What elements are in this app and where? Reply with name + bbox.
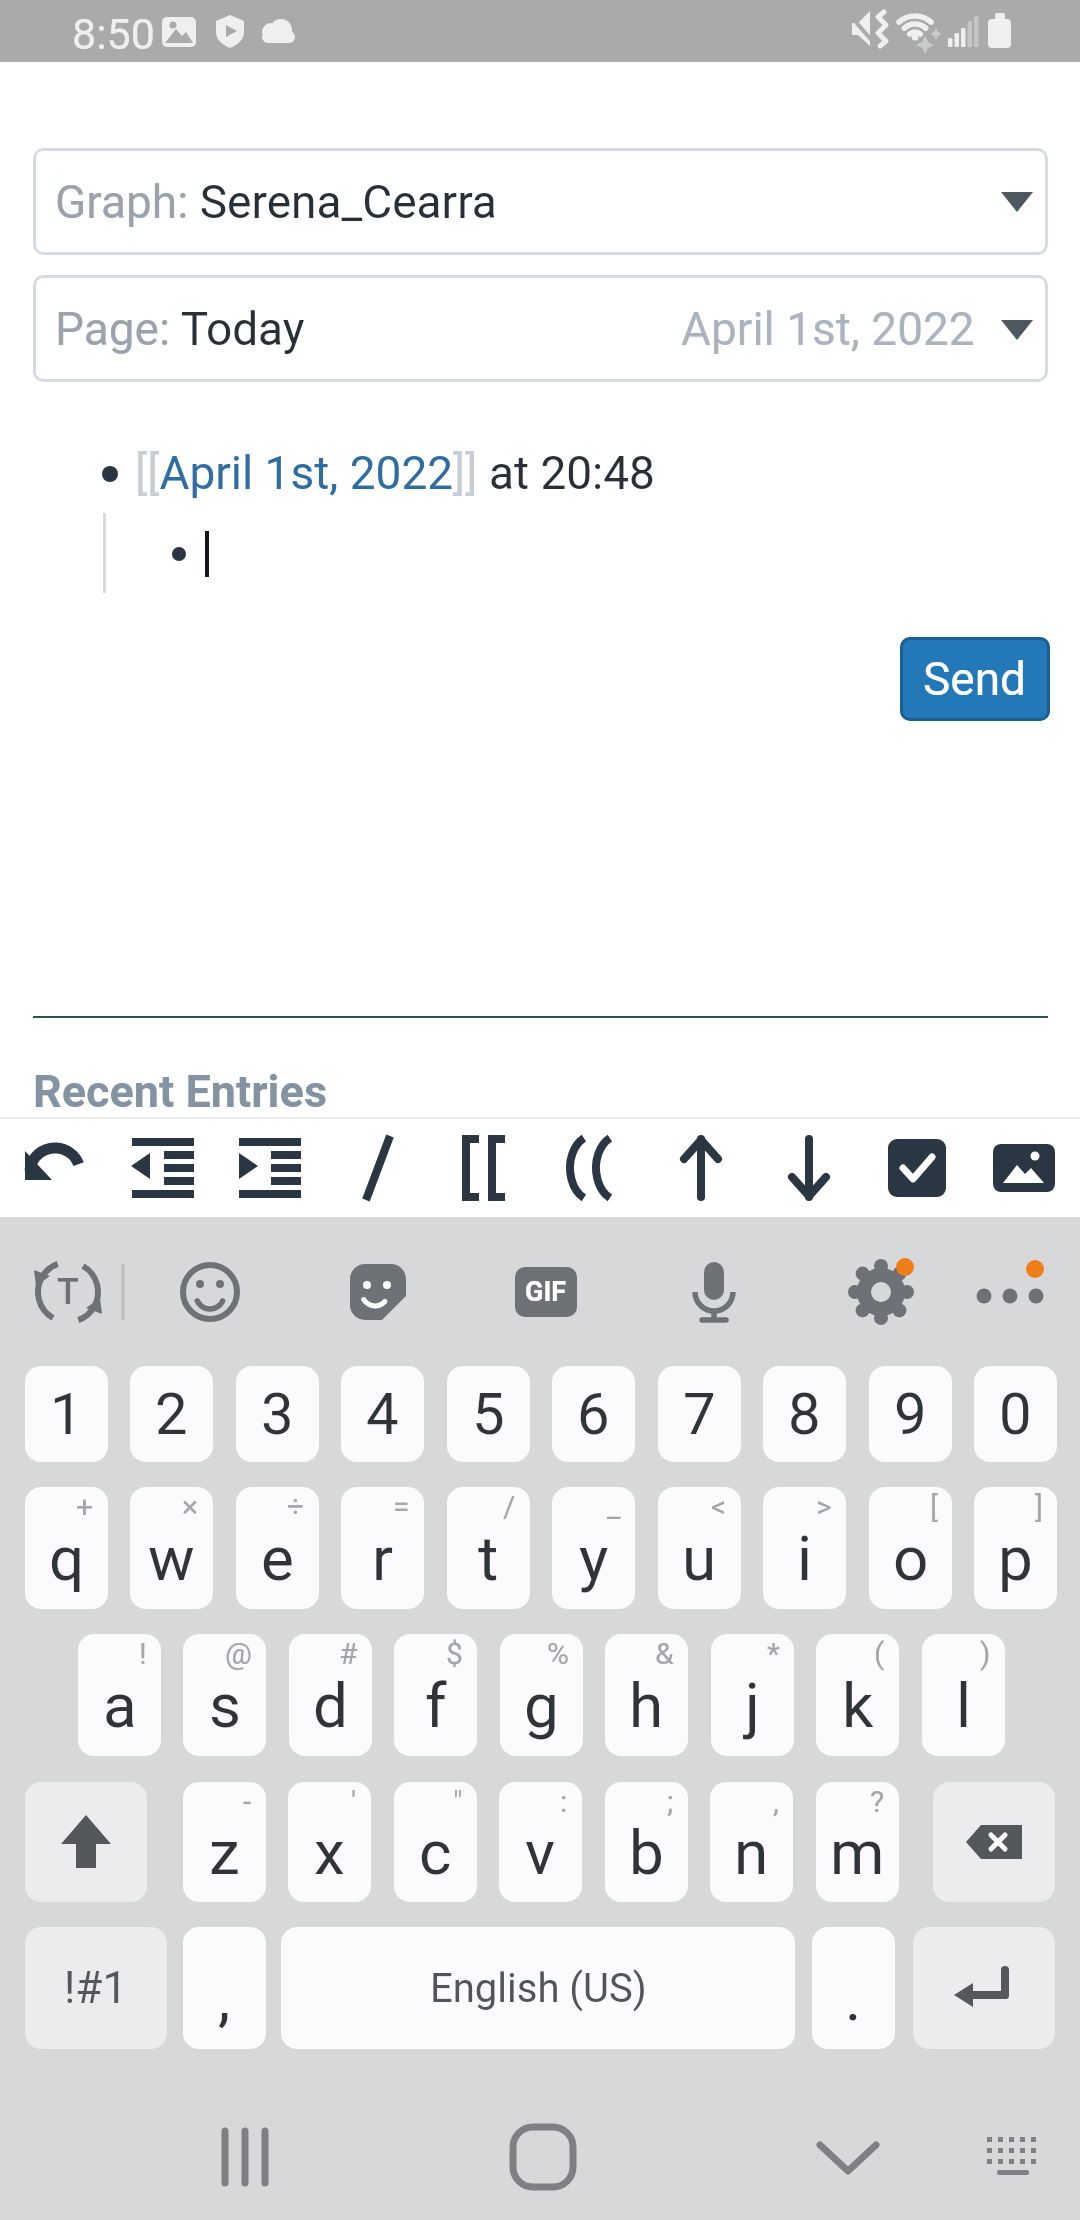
button[interactable] xyxy=(25,1782,147,1902)
staticText: l xyxy=(956,1669,972,1742)
button[interactable] xyxy=(160,1247,260,1337)
button[interactable]: x xyxy=(288,1782,371,1902)
button[interactable]: k xyxy=(816,1634,899,1756)
button[interactable]: z xyxy=(183,1782,266,1902)
button[interactable]: g xyxy=(500,1634,583,1756)
button[interactable] xyxy=(831,1247,931,1337)
staticText: d xyxy=(313,1669,348,1742)
button[interactable] xyxy=(10,1123,100,1213)
staticText: # xyxy=(339,1636,358,1671)
button[interactable]: 6 xyxy=(552,1366,635,1462)
button[interactable]: 7 xyxy=(658,1366,741,1462)
button[interactable] xyxy=(18,1247,118,1337)
button[interactable] xyxy=(933,1782,1055,1902)
button[interactable]: 1 xyxy=(25,1366,108,1462)
button[interactable]: o xyxy=(869,1487,952,1609)
button[interactable]: 3 xyxy=(236,1366,319,1462)
button[interactable]: e xyxy=(236,1487,319,1609)
staticText: p xyxy=(998,1522,1033,1595)
button[interactable]: English (US) xyxy=(281,1927,795,2049)
button[interactable] xyxy=(483,2102,603,2212)
staticText: 0 xyxy=(999,1380,1032,1448)
button[interactable]: 5 xyxy=(447,1366,530,1462)
button[interactable]: 4 xyxy=(341,1366,424,1462)
button[interactable] xyxy=(549,1123,639,1213)
button[interactable] xyxy=(656,1123,746,1213)
staticText: h xyxy=(629,1669,664,1742)
button[interactable]: c xyxy=(394,1782,477,1902)
button[interactable]: y xyxy=(552,1487,635,1609)
button[interactable]: b xyxy=(605,1782,688,1902)
button[interactable] xyxy=(118,1123,208,1213)
staticText: GIF xyxy=(525,1276,567,1308)
staticText: [[April 1st, 2022]] at 20:48 xyxy=(135,446,655,500)
button[interactable] xyxy=(764,1123,854,1213)
staticText: z xyxy=(209,1816,240,1889)
staticText: : xyxy=(560,1784,568,1819)
button[interactable]: h xyxy=(605,1634,688,1756)
staticText: ? xyxy=(870,1784,885,1819)
staticText: 4 xyxy=(366,1380,399,1448)
button[interactable]: 9 xyxy=(869,1366,952,1462)
staticText: % xyxy=(547,1636,569,1671)
staticText: , xyxy=(218,1962,231,2035)
button[interactable]: q xyxy=(25,1487,108,1609)
button[interactable]: i xyxy=(763,1487,846,1609)
staticText: v xyxy=(525,1816,556,1889)
button[interactable] xyxy=(328,1247,428,1337)
button[interactable]: r xyxy=(341,1487,424,1609)
staticText: u xyxy=(682,1522,717,1595)
staticText: ; xyxy=(667,1784,674,1819)
button[interactable]: , xyxy=(183,1927,266,2049)
button[interactable]: f xyxy=(394,1634,477,1756)
button[interactable]: n xyxy=(710,1782,793,1902)
button[interactable]: p xyxy=(974,1487,1057,1609)
button[interactable] xyxy=(441,1123,531,1213)
button[interactable]: j xyxy=(711,1634,794,1756)
button[interactable]: 8 xyxy=(763,1366,846,1462)
button[interactable]: s xyxy=(183,1634,266,1756)
button[interactable] xyxy=(872,1123,962,1213)
button[interactable] xyxy=(963,2107,1063,2207)
button[interactable]: u xyxy=(658,1487,741,1609)
button[interactable] xyxy=(664,1247,764,1337)
button[interactable]: m xyxy=(816,1782,899,1902)
button[interactable] xyxy=(185,2102,305,2212)
staticText: April 1st, 2022 xyxy=(681,302,975,356)
button[interactable]: Send xyxy=(900,637,1050,721)
button[interactable]: !#1 xyxy=(25,1927,167,2049)
button[interactable]: Page: Today xyxy=(33,275,1048,382)
staticText: 1 xyxy=(50,1380,83,1448)
button[interactable]: t xyxy=(447,1487,530,1609)
button[interactable]: a xyxy=(78,1634,161,1756)
staticText: q xyxy=(49,1522,85,1595)
button[interactable] xyxy=(225,1123,315,1213)
button[interactable]: . xyxy=(812,1927,895,2049)
button[interactable]: Graph: Serena_Cearra xyxy=(33,148,1048,255)
staticText: & xyxy=(655,1636,674,1671)
button[interactable] xyxy=(913,1927,1055,2049)
button[interactable]: 0 xyxy=(974,1366,1057,1462)
button[interactable] xyxy=(333,1123,423,1213)
staticText: Page: Today xyxy=(55,302,305,356)
button[interactable]: w xyxy=(130,1487,213,1609)
button[interactable]: v xyxy=(499,1782,582,1902)
staticText: e xyxy=(261,1522,294,1595)
button[interactable]: d xyxy=(289,1634,372,1756)
button[interactable] xyxy=(788,2102,908,2212)
staticText: T xyxy=(57,1271,79,1313)
button[interactable]: l xyxy=(922,1634,1005,1756)
staticText: _ xyxy=(607,1489,621,1524)
staticText: ) xyxy=(980,1636,991,1671)
staticText: ! xyxy=(139,1636,147,1671)
staticText: 2 xyxy=(155,1380,188,1448)
staticText: y xyxy=(579,1522,609,1595)
staticText: t xyxy=(478,1522,499,1595)
button[interactable] xyxy=(496,1247,596,1337)
staticText: r xyxy=(372,1522,394,1595)
staticText: k xyxy=(842,1669,874,1742)
staticText: Recent Entries xyxy=(33,1065,328,1118)
button[interactable] xyxy=(960,1247,1060,1337)
button[interactable]: 2 xyxy=(130,1366,213,1462)
button[interactable] xyxy=(979,1123,1069,1213)
